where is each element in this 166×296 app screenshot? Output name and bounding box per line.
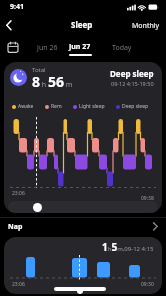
button[interactable] <box>77 288 83 294</box>
button[interactable] <box>2 17 18 33</box>
staticText: Sleep <box>71 19 93 30</box>
staticText: 1h5m,09-12 4:15 <box>102 240 154 254</box>
button[interactable]: Monthly <box>0 0 28 10</box>
staticText: 9:41 <box>10 2 24 12</box>
staticText: Nap <box>8 222 23 232</box>
staticText: 09-12 4:15-19:50 <box>111 80 154 87</box>
button[interactable]: 1h5m,09-12 4:15 <box>4 237 162 294</box>
staticText: Deep sleep <box>122 103 149 110</box>
button[interactable] <box>6 40 20 54</box>
staticText: Rem <box>51 103 62 110</box>
staticText: 09:30 <box>141 281 154 288</box>
staticText: 09:38 <box>141 195 154 202</box>
button[interactable]: Nap <box>0 219 166 234</box>
staticText: 23:06 <box>12 190 25 197</box>
staticText: Awake <box>18 103 34 110</box>
staticText: Deep sleep <box>110 68 154 79</box>
button[interactable]: Total <box>4 62 162 213</box>
button[interactable] <box>54 287 106 291</box>
staticText: 23:06 <box>12 281 25 288</box>
button[interactable]: Jun 27 <box>0 0 22 10</box>
button[interactable]: Jun 26 <box>0 0 21 10</box>
staticText: 8 h 56 m <box>32 72 73 91</box>
button[interactable] <box>33 203 42 212</box>
button[interactable] <box>8 201 158 213</box>
staticText: Light sleep <box>79 103 105 110</box>
staticText: Total <box>32 66 46 74</box>
button[interactable]: Today <box>0 0 20 10</box>
